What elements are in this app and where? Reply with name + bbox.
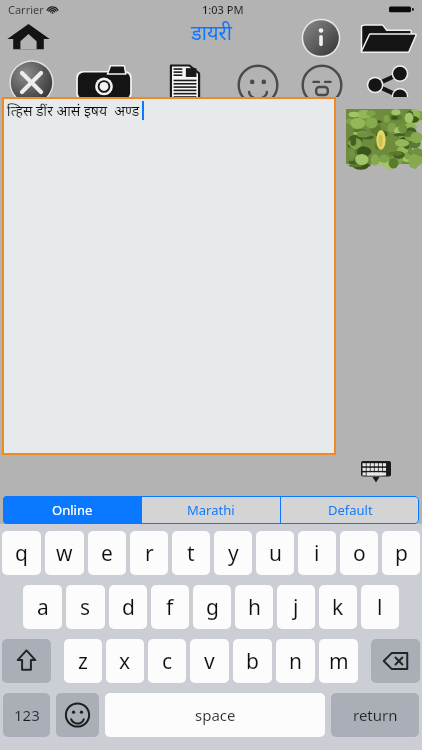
button[interactable]: Share: [365, 66, 411, 104]
button[interactable]: k: [319, 585, 357, 629]
button[interactable]: p: [382, 531, 420, 575]
staticText: x: [119, 647, 131, 676]
button[interactable]: h: [235, 585, 273, 629]
staticText: b: [246, 647, 259, 676]
button[interactable]: Hide keyboard: [361, 461, 391, 483]
staticText: f: [166, 593, 174, 622]
staticText: v: [204, 647, 215, 676]
button[interactable]: Emoji: [56, 693, 99, 737]
button[interactable]: Shift: [2, 639, 51, 683]
staticText: Default: [328, 501, 373, 519]
button[interactable]: Marathi: [142, 496, 280, 524]
button[interactable]: m: [319, 639, 358, 683]
staticText: w: [56, 539, 73, 568]
button[interactable]: q: [2, 531, 41, 575]
button[interactable]: y: [214, 531, 252, 575]
button[interactable]: Default: [281, 496, 419, 524]
button[interactable]: c: [148, 639, 186, 683]
button[interactable]: return: [331, 693, 419, 737]
staticText: space: [195, 705, 236, 725]
staticText: d: [122, 593, 135, 622]
button[interactable]: Online: [3, 496, 141, 524]
button[interactable]: Clear: [9, 60, 54, 105]
staticText: t: [187, 539, 195, 568]
button[interactable]: w: [45, 531, 84, 575]
staticText: u: [269, 539, 282, 568]
staticText: Carrier: [8, 2, 44, 17]
button[interactable]: j: [277, 585, 315, 629]
button[interactable]: g: [193, 585, 231, 629]
button[interactable]: n: [276, 639, 315, 683]
button[interactable]: x: [106, 639, 144, 683]
button[interactable]: Info: [302, 19, 340, 57]
button[interactable]: Emoji wink: [237, 64, 279, 106]
staticText: g: [206, 593, 219, 622]
button[interactable]: i: [298, 531, 336, 575]
staticText: r: [145, 539, 154, 568]
button[interactable]: z: [64, 639, 102, 683]
button[interactable]: t: [172, 531, 210, 575]
staticText: i: [314, 539, 320, 568]
button[interactable]: 123: [3, 693, 50, 737]
button[interactable]: b: [233, 639, 272, 683]
button[interactable]: Camera: [75, 65, 133, 102]
staticText: त्हिस डींर आसं इषय अण्ड: [7, 101, 140, 120]
button[interactable]: त्हिस डींर आसं इषय अण्ड: [2, 97, 336, 455]
staticText: h: [248, 593, 261, 622]
button[interactable]: d: [109, 585, 147, 629]
staticText: Marathi: [187, 501, 235, 519]
staticText: return: [353, 705, 398, 725]
button[interactable]: l: [361, 585, 399, 629]
staticText: डायरी: [191, 19, 232, 46]
button[interactable]: Home: [6, 21, 51, 50]
button[interactable]: e: [88, 531, 126, 575]
button[interactable]: Emoji: [301, 64, 343, 106]
button[interactable]: a: [23, 585, 62, 629]
staticText: z: [78, 647, 88, 676]
staticText: 1:03 PM: [202, 2, 244, 17]
staticText: n: [289, 647, 302, 676]
staticText: p: [395, 539, 408, 568]
staticText: Online: [52, 501, 93, 519]
button[interactable]: r: [130, 531, 168, 575]
staticText: e: [101, 539, 113, 568]
staticText: c: [162, 647, 173, 676]
button[interactable]: Backspace: [371, 639, 420, 683]
button[interactable]: u: [256, 531, 294, 575]
staticText: m: [329, 647, 349, 676]
button[interactable]: Document: [163, 62, 207, 106]
staticText: j: [293, 593, 299, 622]
button[interactable]: Folder: [360, 22, 416, 54]
button[interactable]: v: [190, 639, 229, 683]
staticText: s: [80, 593, 91, 622]
staticText: o: [353, 539, 366, 568]
button[interactable]: Photo thumbnail: [346, 109, 412, 164]
staticText: q: [15, 539, 28, 568]
staticText: 123: [14, 705, 40, 725]
staticText: k: [332, 593, 344, 622]
staticText: a: [37, 593, 49, 622]
button[interactable]: o: [340, 531, 378, 575]
staticText: y: [228, 539, 239, 568]
staticText: l: [377, 593, 383, 622]
button[interactable]: s: [66, 585, 105, 629]
button[interactable]: f: [151, 585, 189, 629]
button[interactable]: space: [105, 693, 325, 737]
